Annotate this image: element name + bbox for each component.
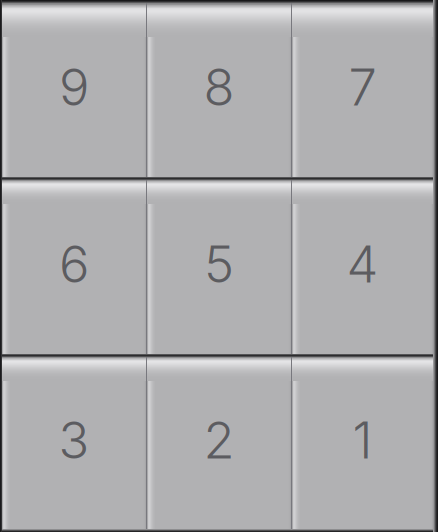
button[interactable]: 1 (292, 357, 433, 529)
button[interactable]: 6 (2, 180, 146, 354)
staticText: 4 (346, 233, 378, 295)
staticText: 2 (203, 409, 234, 471)
staticText: 3 (58, 409, 89, 471)
staticText: 1 (352, 409, 372, 471)
staticText: 7 (348, 56, 376, 118)
button[interactable]: 5 (147, 180, 291, 354)
staticText: 9 (59, 56, 89, 118)
button[interactable]: 3 (2, 357, 146, 529)
staticText: 8 (203, 56, 234, 118)
button[interactable]: 8 (147, 3, 291, 177)
staticText: 6 (59, 233, 89, 295)
button[interactable]: 7 (292, 3, 433, 177)
button[interactable]: 2 (147, 357, 291, 529)
staticText: 5 (204, 233, 234, 295)
button[interactable]: 4 (292, 180, 433, 354)
button[interactable]: 9 (2, 3, 146, 177)
